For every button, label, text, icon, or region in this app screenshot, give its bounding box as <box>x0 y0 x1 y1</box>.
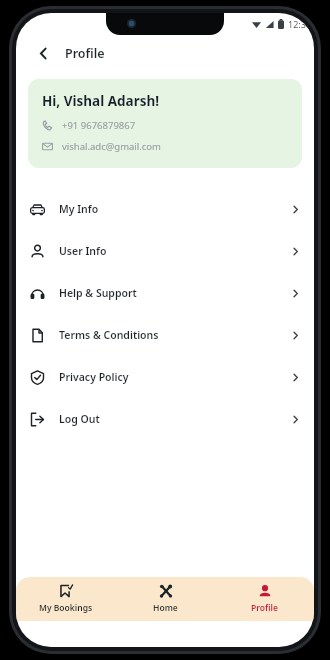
button[interactable]: My Bookings <box>16 577 116 621</box>
staticText: 12:3 <box>288 18 306 30</box>
button[interactable]: My Info <box>16 188 314 230</box>
staticText: Profile <box>251 602 278 614</box>
staticText: Terms & Conditions <box>59 328 159 342</box>
button[interactable]: Terms & Conditions <box>16 314 314 356</box>
button[interactable]: Profile <box>215 577 314 621</box>
staticText: Privacy Policy <box>59 370 129 384</box>
staticText: Home <box>153 602 178 614</box>
staticText: User Info <box>59 244 107 258</box>
staticText: +91 9676879867 <box>62 119 136 132</box>
staticText: My Info <box>59 202 99 216</box>
button[interactable]: Privacy Policy <box>16 356 314 398</box>
staticText: Hi, Vishal Adarsh! <box>42 92 160 110</box>
button[interactable]: Help & Support <box>16 272 314 314</box>
button[interactable]: Hi, Vishal Adarsh! <box>28 79 302 168</box>
staticText: Help & Support <box>59 286 137 300</box>
staticText: My Bookings <box>39 602 93 614</box>
staticText: vishal.adc@gmail.com <box>62 140 161 153</box>
button[interactable]: User Info <box>16 230 314 272</box>
button[interactable]: Home <box>116 577 215 621</box>
button[interactable]: Back <box>30 40 56 66</box>
staticText: Log Out <box>59 412 100 426</box>
staticText: Profile <box>65 45 105 62</box>
button[interactable]: Log Out <box>16 398 314 440</box>
